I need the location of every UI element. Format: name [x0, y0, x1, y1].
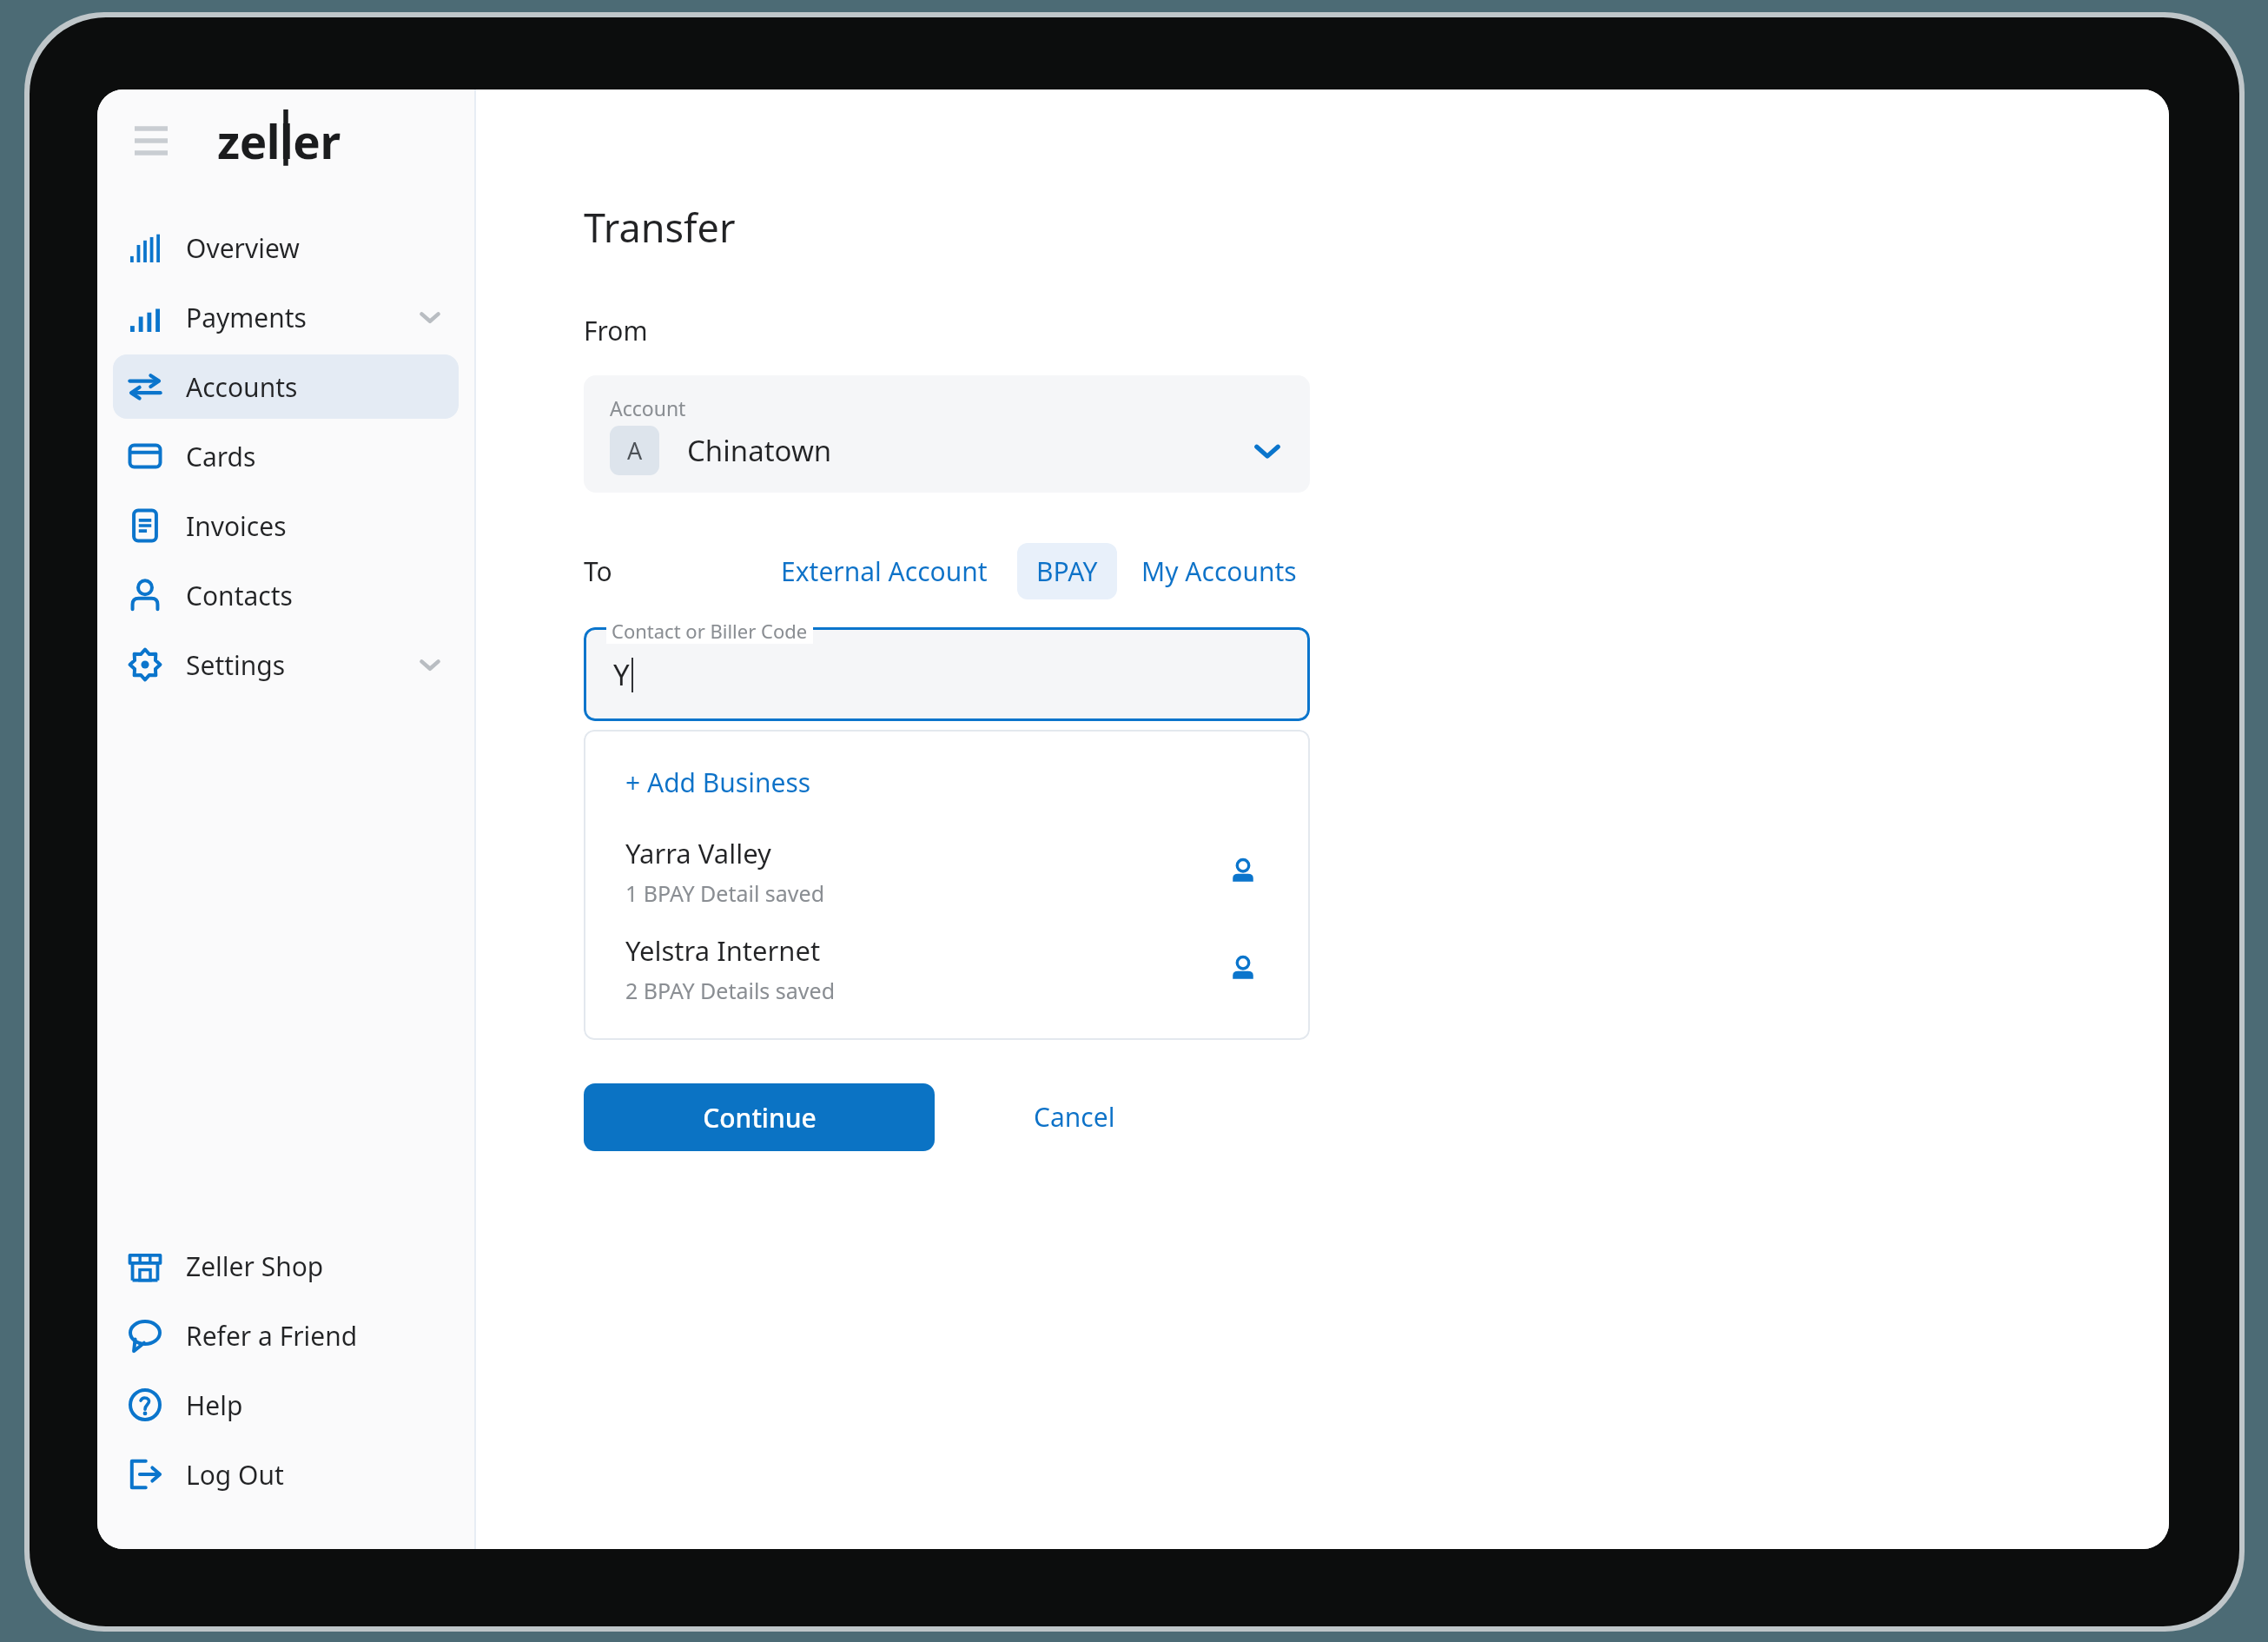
staticText: Account: [610, 394, 686, 421]
button[interactable]: Menu: [125, 115, 177, 167]
staticText: Contacts: [186, 578, 293, 613]
staticText: Cards: [186, 439, 256, 474]
staticText: Yarra Valley: [625, 835, 771, 871]
staticText: Y: [613, 655, 630, 694]
staticText: Invoices: [186, 508, 287, 544]
staticText: External Account: [781, 553, 988, 589]
staticText: Help: [186, 1387, 243, 1423]
button[interactable]: Payments: [113, 285, 459, 349]
button[interactable]: Zeller Shop: [113, 1234, 459, 1298]
staticText: From: [584, 313, 648, 348]
button[interactable]: Yelstra Internet: [584, 917, 1310, 1014]
staticText: Contact or Biller Code: [612, 618, 808, 644]
staticText: Settings: [186, 647, 286, 683]
button[interactable]: Refer a Friend: [113, 1303, 459, 1367]
button[interactable]: Yarra Valley: [584, 819, 1310, 917]
button[interactable]: Settings: [113, 632, 459, 697]
button[interactable]: External Account: [769, 543, 1000, 599]
staticText: Log Out: [186, 1457, 284, 1493]
staticText: + Add Business: [625, 765, 811, 800]
staticText: 1 BPAY Detail saved: [625, 878, 825, 908]
button[interactable]: Account: [584, 375, 1310, 493]
staticText: Continue: [703, 1100, 817, 1135]
button[interactable]: Overview: [113, 215, 459, 280]
staticText: A: [627, 434, 643, 467]
staticText: 2 BPAY Details saved: [625, 976, 836, 1005]
button[interactable]: Invoices: [113, 493, 459, 558]
button[interactable]: Cards: [113, 424, 459, 488]
button[interactable]: Cancel: [1002, 1082, 1147, 1152]
staticText: Chinatown: [687, 431, 832, 470]
button[interactable]: + Add Business: [584, 730, 1310, 819]
staticText: zeller: [217, 109, 341, 172]
button[interactable]: Accounts: [113, 354, 459, 419]
staticText: Yelstra Internet: [625, 932, 821, 969]
button[interactable]: Log Out: [113, 1442, 459, 1506]
staticText: Overview: [186, 230, 300, 266]
staticText: Accounts: [186, 369, 298, 405]
staticText: Payments: [186, 300, 307, 335]
button[interactable]: Contacts: [113, 563, 459, 627]
button[interactable]: Continue: [584, 1083, 935, 1151]
staticText: BPAY: [1036, 553, 1098, 589]
button[interactable]: My Accounts: [1134, 543, 1304, 599]
staticText: Zeller Shop: [186, 1248, 324, 1284]
button[interactable]: BPAY: [1017, 543, 1117, 599]
staticText: Refer a Friend: [186, 1318, 358, 1354]
button[interactable]: [584, 627, 1310, 721]
staticText: My Accounts: [1141, 553, 1297, 589]
staticText: Cancel: [1034, 1099, 1115, 1135]
staticText: Transfer: [584, 201, 736, 254]
button[interactable]: Help: [113, 1373, 459, 1437]
staticText: To: [584, 553, 612, 589]
